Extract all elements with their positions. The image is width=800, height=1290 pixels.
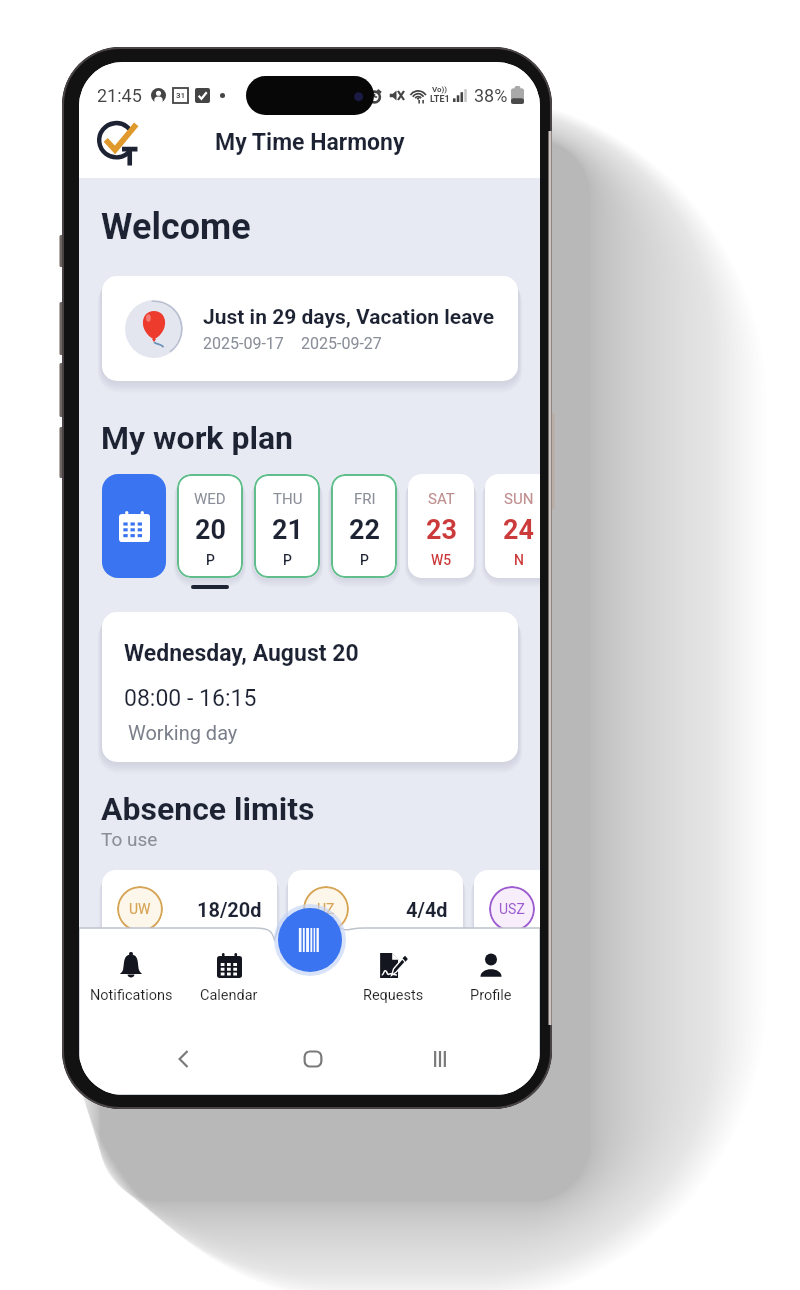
staticText: 08:00 - 16:15	[124, 685, 257, 712]
staticText: UW	[129, 901, 151, 917]
staticText: Notifications	[90, 987, 173, 1004]
staticText: Requests	[363, 987, 424, 1004]
staticText: 38%	[474, 85, 508, 106]
staticText: THU	[273, 490, 303, 508]
staticText: USZ	[499, 901, 525, 917]
staticText: Just in 29 days, Vacation leave	[203, 305, 495, 330]
button[interactable]: FRI	[331, 474, 397, 578]
staticText: To use	[101, 828, 158, 850]
staticText: P	[206, 552, 215, 568]
button[interactable]: Wednesday, August 20	[102, 612, 518, 762]
button[interactable]: Scan barcode	[278, 908, 342, 972]
button[interactable]: Notifications	[83, 951, 179, 1004]
staticText: Profile	[470, 987, 512, 1004]
staticText: My work plan	[101, 419, 293, 457]
staticText: WED	[194, 490, 226, 508]
button[interactable]: WED	[177, 474, 243, 578]
staticText: Absence limits	[101, 790, 315, 828]
staticText: N	[514, 552, 524, 568]
staticText: FRI	[354, 490, 376, 508]
staticText: Calendar	[200, 987, 258, 1004]
staticText: Vo))	[432, 85, 448, 94]
button[interactable]: Just in 29 days, Vacation leave	[102, 276, 518, 381]
staticText: Welcome	[101, 206, 251, 248]
staticText: 20	[195, 514, 226, 546]
staticText: Wednesday, August 20	[124, 640, 359, 667]
button[interactable]: Profile	[443, 951, 539, 1004]
button[interactable]: UZ	[288, 870, 463, 948]
staticText: 18/20d	[197, 898, 262, 921]
staticText: 2025-09-17	[203, 334, 284, 353]
button[interactable]: SAT	[408, 474, 474, 578]
staticText: 4/4d	[406, 898, 448, 921]
staticText: 23	[426, 514, 457, 546]
button[interactable]: Calendar	[181, 951, 277, 1004]
button[interactable]: USZ	[474, 870, 540, 948]
staticText: 21:45	[97, 85, 142, 106]
staticText: LTE1	[430, 94, 450, 105]
staticText: P	[283, 552, 292, 568]
staticText: UZ	[317, 901, 335, 917]
staticText: SAT	[428, 490, 455, 508]
staticText: 24	[503, 514, 534, 546]
staticText: 22	[349, 514, 380, 546]
staticText: 21	[272, 514, 303, 546]
staticText: SUN	[504, 490, 534, 508]
button[interactable]: Requests	[345, 951, 441, 1004]
staticText: P	[360, 552, 369, 568]
button[interactable]: Open calendar	[102, 474, 166, 578]
staticText: W5	[431, 552, 452, 568]
button[interactable]: UW	[102, 870, 277, 948]
staticText: 31	[176, 91, 186, 100]
staticText: 2025-09-27	[301, 334, 382, 353]
button[interactable]: SUN	[485, 474, 540, 578]
staticText: My Time Harmony	[215, 129, 405, 156]
staticText: Working day	[128, 721, 238, 744]
button[interactable]: THU	[254, 474, 320, 578]
